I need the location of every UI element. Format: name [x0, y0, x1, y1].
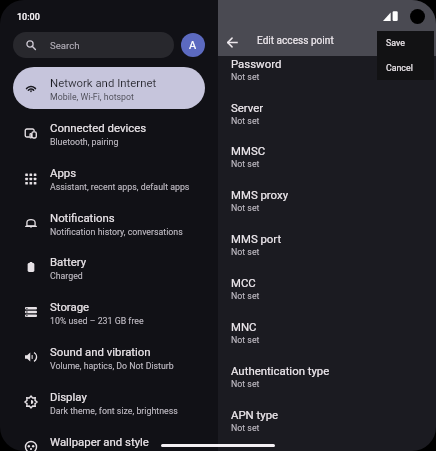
button[interactable]: APN type: [218, 399, 436, 443]
button[interactable]: Network and Internet: [13, 67, 205, 109]
staticText: Volume, haptics, Do Not Disturb: [50, 361, 174, 371]
staticText: Password: [231, 57, 282, 70]
button[interactable]: Wallpaper and style: [13, 426, 205, 451]
staticText: Not set: [231, 379, 260, 389]
staticText: Notification history, conversations: [50, 227, 183, 237]
staticText: Charged: [50, 271, 83, 281]
staticText: Search: [50, 40, 80, 51]
staticText: Display: [50, 390, 87, 403]
button[interactable]: MCC: [218, 267, 436, 311]
staticText: Not set: [231, 247, 260, 257]
staticText: Wallpaper and style: [50, 435, 149, 448]
button[interactable]: MNC: [218, 311, 436, 355]
staticText: Edit access point: [257, 35, 334, 47]
staticText: Not set: [231, 423, 260, 433]
button[interactable]: Account: [181, 33, 205, 57]
staticText: Cancel: [386, 63, 413, 73]
staticText: 10% used – 231 GB free: [50, 316, 144, 326]
button[interactable]: Display: [13, 381, 205, 423]
button[interactable]: Cancel: [377, 55, 434, 80]
staticText: Assistant, recent apps, default apps: [50, 182, 190, 192]
staticText: Battery: [50, 255, 87, 268]
staticText: Not set: [231, 291, 260, 301]
staticText: Not set: [231, 116, 260, 126]
staticText: MMS port: [231, 232, 282, 245]
staticText: Not set: [231, 335, 260, 345]
staticText: Bluetooth, pairing: [50, 137, 119, 147]
staticText: APN type: [231, 408, 279, 421]
staticText: Connected devices: [50, 121, 147, 134]
button[interactable]: Battery: [13, 246, 205, 288]
button[interactable]: Apps: [13, 157, 205, 199]
button[interactable]: Sound and vibration: [13, 336, 205, 378]
staticText: Notifications: [50, 211, 115, 224]
staticText: MCC: [231, 276, 256, 289]
staticText: Sound and vibration: [50, 345, 151, 358]
button[interactable]: Back: [219, 29, 246, 56]
staticText: Authentication type: [231, 364, 330, 377]
staticText: Mobile, Wi-Fi, hotspot: [50, 92, 134, 102]
staticText: MMS proxy: [231, 188, 289, 201]
staticText: Apps: [50, 166, 77, 179]
button[interactable]: Save: [377, 31, 434, 55]
button[interactable]: Storage: [13, 291, 205, 333]
button[interactable]: Connected devices: [13, 112, 205, 154]
staticText: A: [189, 39, 197, 52]
staticText: Not set: [231, 203, 260, 213]
button[interactable]: MMSC: [218, 135, 436, 179]
button[interactable]: Authentication type: [218, 355, 436, 399]
button[interactable]: Password: [218, 48, 436, 92]
button[interactable]: Server: [218, 92, 436, 136]
button[interactable]: Search: [13, 32, 174, 58]
staticText: MNC: [231, 320, 257, 333]
button[interactable]: MMS proxy: [218, 179, 436, 223]
staticText: MMSC: [231, 144, 266, 157]
staticText: Not set: [231, 72, 260, 82]
button[interactable]: MMS port: [218, 223, 436, 267]
staticText: Storage: [50, 300, 90, 313]
staticText: 10:00: [17, 12, 40, 23]
staticText: Dark theme, font size, brightness: [50, 406, 178, 416]
staticText: Not set: [231, 159, 260, 169]
button[interactable]: Notifications: [13, 202, 205, 244]
staticText: Save: [386, 38, 405, 48]
staticText: Network and Internet: [50, 76, 157, 89]
staticText: Server: [231, 101, 264, 114]
